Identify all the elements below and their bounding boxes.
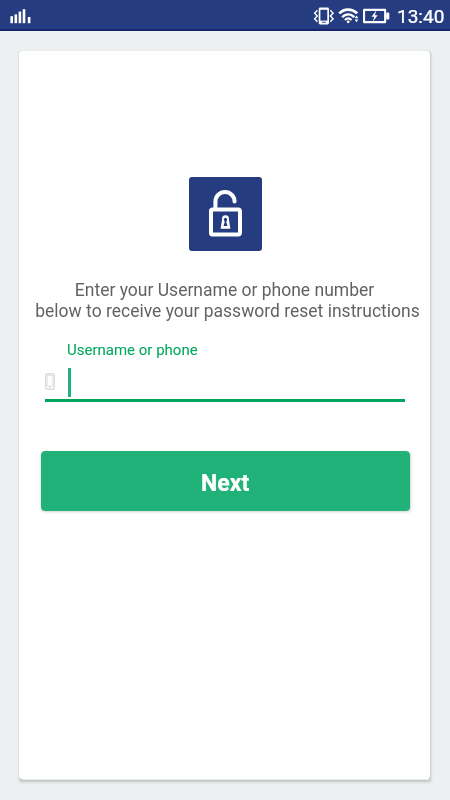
other: Wi-Fi — [338, 1, 359, 30]
staticText: Enter your Username or phone number — [19, 280, 430, 301]
other: Vibrate mode — [314, 7, 334, 25]
staticText: Next — [201, 470, 250, 497]
button[interactable]: Username or phone — [41, 336, 410, 404]
button[interactable]: Next — [41, 451, 410, 511]
staticText: 13:40 — [397, 5, 445, 27]
staticText: below to receive your password reset ins… — [22, 301, 430, 322]
other: Battery charging — [363, 6, 390, 26]
staticText: Username or phone — [67, 341, 198, 359]
